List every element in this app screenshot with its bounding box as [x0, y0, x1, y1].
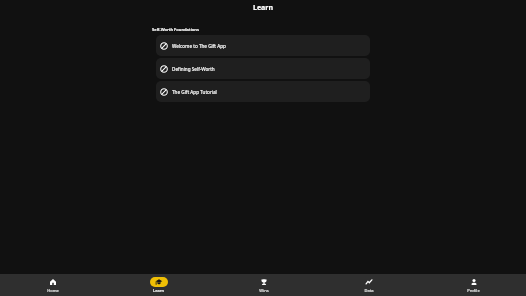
- staticText: Learn: [153, 288, 164, 293]
- staticText: Data: [364, 288, 374, 293]
- staticText: Learn: [253, 3, 273, 13]
- staticText: Self-Worth Foundations: [152, 27, 199, 33]
- other: Not started: [160, 42, 168, 50]
- button[interactable]: Not started: [156, 35, 370, 56]
- other: Not started: [160, 88, 168, 96]
- button[interactable]: Wins: [211, 274, 316, 296]
- staticText: Home: [47, 288, 59, 293]
- staticText: The Gift App Tutorial: [172, 89, 217, 95]
- staticText: Profile: [467, 288, 480, 293]
- staticText: Wins: [259, 288, 269, 293]
- button[interactable]: Learn: [106, 274, 211, 296]
- other: Not started: [160, 65, 168, 73]
- button[interactable]: Data: [316, 274, 421, 296]
- button[interactable]: Profile: [421, 274, 526, 296]
- button[interactable]: Not started: [156, 58, 370, 79]
- staticText: Defining Self-Worth: [172, 66, 215, 72]
- staticText: Welcome to The Gift App: [172, 43, 226, 49]
- button[interactable]: Not started: [156, 81, 370, 102]
- button[interactable]: Home: [0, 274, 106, 296]
